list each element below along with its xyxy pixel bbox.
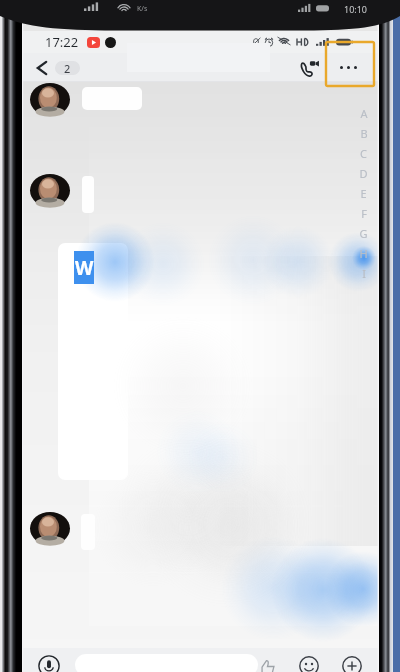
staticText: 17:22 (45, 33, 79, 51)
button[interactable]: Alphabet index (358, 103, 369, 283)
staticText: I (362, 266, 366, 281)
staticText: D (359, 166, 368, 181)
button[interactable]: Video call (295, 54, 323, 82)
button[interactable]: More options (333, 53, 364, 82)
staticText: A (360, 106, 368, 121)
staticText: H (359, 246, 368, 261)
button[interactable]: Voice message (37, 654, 61, 672)
button[interactable]: Back (23, 60, 86, 76)
staticText: 2 (64, 61, 71, 75)
button[interactable]: Emoji (297, 654, 321, 672)
staticText: 10:10 (344, 3, 368, 15)
staticText: C (360, 146, 367, 161)
staticText: B (360, 126, 368, 141)
staticText: E (360, 186, 367, 201)
button[interactable]: Send thumbs up (256, 656, 278, 672)
staticText: F (361, 206, 367, 221)
button[interactable]: More (340, 654, 364, 672)
staticText: K/s (137, 4, 148, 14)
button[interactable]: W (74, 251, 94, 284)
other: Back (36, 60, 48, 76)
staticText: W (75, 255, 94, 281)
staticText: G (359, 226, 368, 241)
